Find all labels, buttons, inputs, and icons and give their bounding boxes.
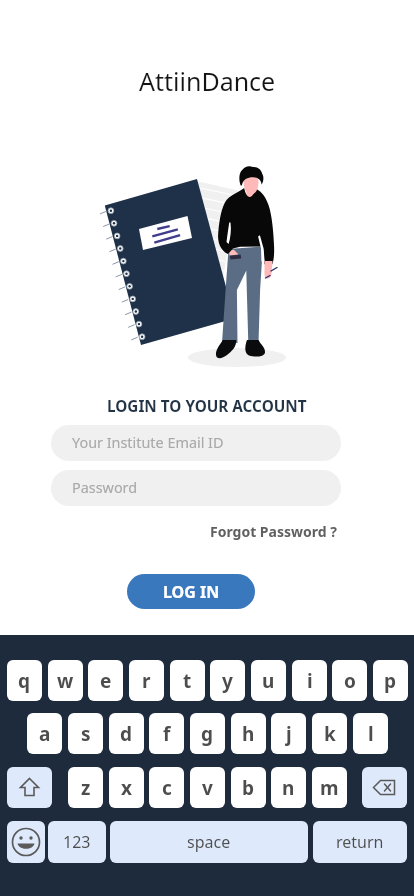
staticText: 123: [63, 831, 91, 853]
staticText: n: [282, 775, 295, 801]
staticText: h: [242, 721, 255, 747]
button[interactable]: l: [353, 713, 388, 754]
button[interactable]: Backspace: [362, 767, 407, 808]
button[interactable]: k: [312, 713, 347, 754]
staticText: z: [81, 775, 91, 801]
button[interactable]: e: [88, 660, 123, 701]
staticText: g: [201, 721, 214, 747]
staticText: LOG IN: [163, 581, 220, 603]
staticText: return: [336, 831, 384, 853]
staticText: w: [57, 668, 74, 694]
button[interactable]: LOG IN: [127, 574, 255, 609]
staticText: c: [162, 775, 172, 801]
button[interactable]: return: [313, 821, 407, 863]
button[interactable]: r: [129, 660, 164, 701]
button[interactable]: b: [231, 767, 266, 808]
staticText: Password: [72, 478, 138, 498]
staticText: x: [121, 775, 132, 801]
button[interactable]: g: [190, 713, 225, 754]
staticText: LOGIN TO YOUR ACCOUNT: [107, 396, 307, 417]
button[interactable]: Password: [51, 470, 341, 506]
button[interactable]: i: [292, 660, 327, 701]
staticText: a: [39, 721, 51, 747]
button[interactable]: s: [68, 713, 103, 754]
staticText: q: [18, 668, 31, 694]
button[interactable]: Your Institute Email ID: [51, 425, 341, 461]
staticText: m: [320, 775, 339, 801]
staticText: l: [368, 721, 374, 747]
staticText: b: [242, 775, 255, 801]
staticText: k: [324, 721, 336, 747]
button[interactable]: h: [231, 713, 266, 754]
staticText: j: [286, 721, 292, 747]
button[interactable]: c: [149, 767, 184, 808]
staticText: e: [100, 668, 112, 694]
button[interactable]: v: [190, 767, 225, 808]
button[interactable]: d: [109, 713, 144, 754]
staticText: v: [202, 775, 213, 801]
staticText: y: [222, 668, 233, 694]
button[interactable]: space: [110, 821, 308, 863]
staticText: p: [384, 668, 397, 694]
button[interactable]: z: [68, 767, 103, 808]
button[interactable]: p: [373, 660, 408, 701]
button[interactable]: t: [170, 660, 205, 701]
staticText: s: [81, 721, 91, 747]
staticText: o: [344, 668, 356, 694]
staticText: Your Institute Email ID: [72, 433, 224, 453]
button[interactable]: y: [210, 660, 245, 701]
staticText: d: [120, 721, 133, 747]
button[interactable]: Emoji: [7, 821, 45, 863]
staticText: t: [183, 668, 192, 694]
staticText: i: [307, 668, 313, 694]
button[interactable]: u: [251, 660, 286, 701]
staticText: u: [262, 668, 275, 694]
button[interactable]: j: [271, 713, 306, 754]
staticText: Forgot Password ?: [210, 522, 337, 541]
button[interactable]: m: [312, 767, 347, 808]
button[interactable]: o: [332, 660, 367, 701]
button[interactable]: x: [109, 767, 144, 808]
staticText: AttiinDance: [139, 64, 276, 98]
button[interactable]: f: [149, 713, 184, 754]
staticText: space: [187, 831, 231, 853]
button[interactable]: Forgot Password ?: [204, 518, 343, 545]
button[interactable]: n: [271, 767, 306, 808]
staticText: r: [142, 668, 151, 694]
button[interactable]: q: [7, 660, 42, 701]
button[interactable]: a: [27, 713, 62, 754]
button[interactable]: 123: [48, 821, 106, 863]
staticText: f: [163, 721, 171, 747]
button[interactable]: Shift: [7, 767, 52, 808]
button[interactable]: w: [48, 660, 83, 701]
